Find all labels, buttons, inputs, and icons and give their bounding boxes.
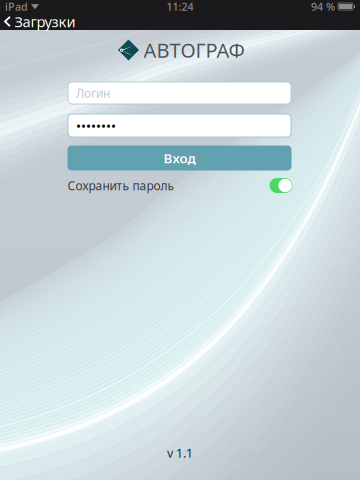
button[interactable]: Загрузки (0, 13, 81, 30)
staticText: 11:24 (166, 0, 193, 14)
staticText: Сохранить пароль (67, 177, 174, 193)
staticText: Загрузки (14, 12, 75, 31)
staticText: АВТОГРАФ (143, 37, 244, 63)
staticText: •••••••• (76, 117, 116, 134)
button[interactable]: Сохранить пароль (269, 178, 292, 193)
staticText: 94 % (311, 0, 335, 14)
staticText: Логин (76, 85, 110, 101)
button[interactable]: Вход (67, 145, 291, 170)
staticText: iPad (5, 0, 28, 14)
staticText: v 1.1 (167, 445, 193, 461)
staticText: Вход (163, 149, 195, 167)
